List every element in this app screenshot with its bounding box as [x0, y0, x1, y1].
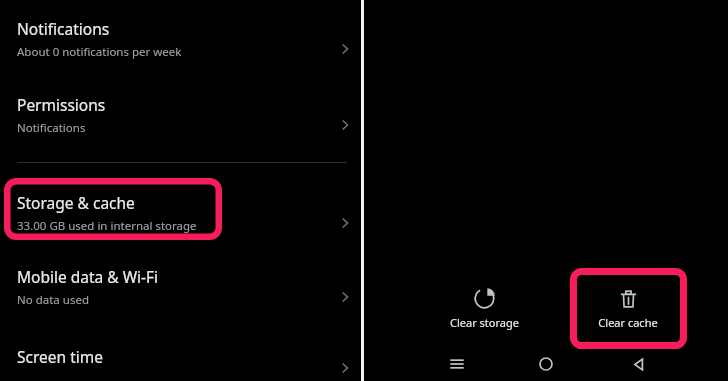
button[interactable]: Storage & cache [0, 192, 362, 254]
staticText: 33.00 GB used in internal storage [17, 218, 197, 234]
button[interactable]: Clear storage [424, 288, 544, 330]
button[interactable]: Notifications [0, 18, 362, 80]
button[interactable]: Recent apps [437, 347, 477, 381]
button[interactable]: Mobile data & Wi-Fi [0, 266, 362, 328]
button[interactable]: Back [618, 347, 658, 381]
staticText: Notifications [17, 18, 110, 39]
staticText: Screen time [17, 346, 103, 367]
staticText: About 0 notifications per week [17, 44, 182, 60]
staticText: Notifications [17, 120, 86, 136]
button[interactable]: Home [526, 347, 566, 381]
button[interactable]: Permissions [0, 94, 362, 156]
button[interactable]: Clear cache [568, 288, 688, 330]
staticText: Storage & cache [17, 192, 135, 213]
button[interactable]: Screen time [0, 346, 362, 381]
staticText: Mobile data & Wi-Fi [17, 266, 159, 287]
staticText: Clear storage [450, 315, 519, 330]
staticText: No data used [17, 292, 89, 308]
staticText: Clear cache [598, 315, 658, 330]
staticText: Permissions [17, 94, 106, 115]
